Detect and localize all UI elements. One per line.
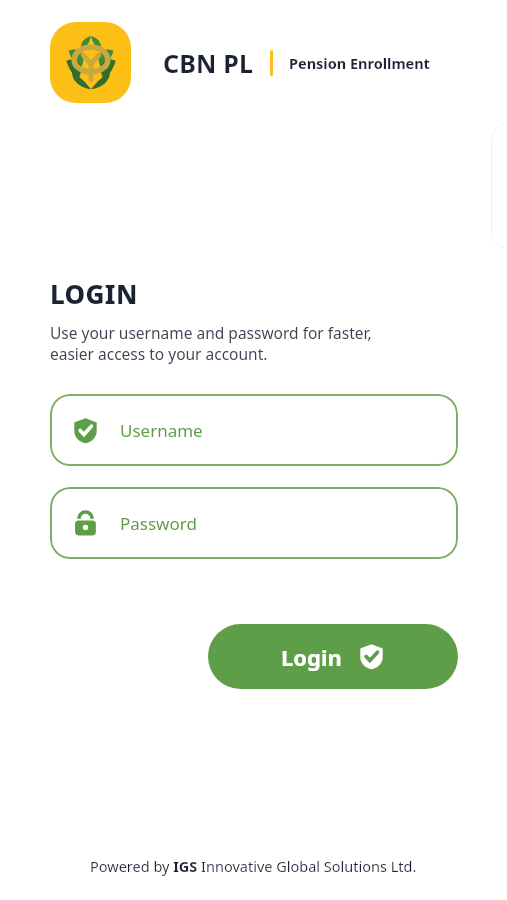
other: Secure bbox=[72, 417, 99, 444]
button[interactable]: Secure bbox=[50, 394, 458, 466]
staticText: LOGIN bbox=[50, 276, 138, 311]
button[interactable]: Login bbox=[208, 624, 458, 689]
other: Password bbox=[72, 510, 99, 537]
staticText: Login bbox=[281, 642, 342, 672]
button[interactable]: Password bbox=[50, 487, 458, 559]
staticText: Pension Enrollment bbox=[289, 53, 430, 73]
staticText: CBN PL bbox=[163, 46, 254, 80]
staticText: Powered by IGS Innovative Global Solutio… bbox=[90, 856, 417, 876]
staticText: Username bbox=[120, 419, 203, 442]
staticText: Password bbox=[120, 512, 197, 535]
staticText: Use your username and password for faste… bbox=[50, 322, 372, 365]
other: Secure bbox=[358, 643, 385, 670]
